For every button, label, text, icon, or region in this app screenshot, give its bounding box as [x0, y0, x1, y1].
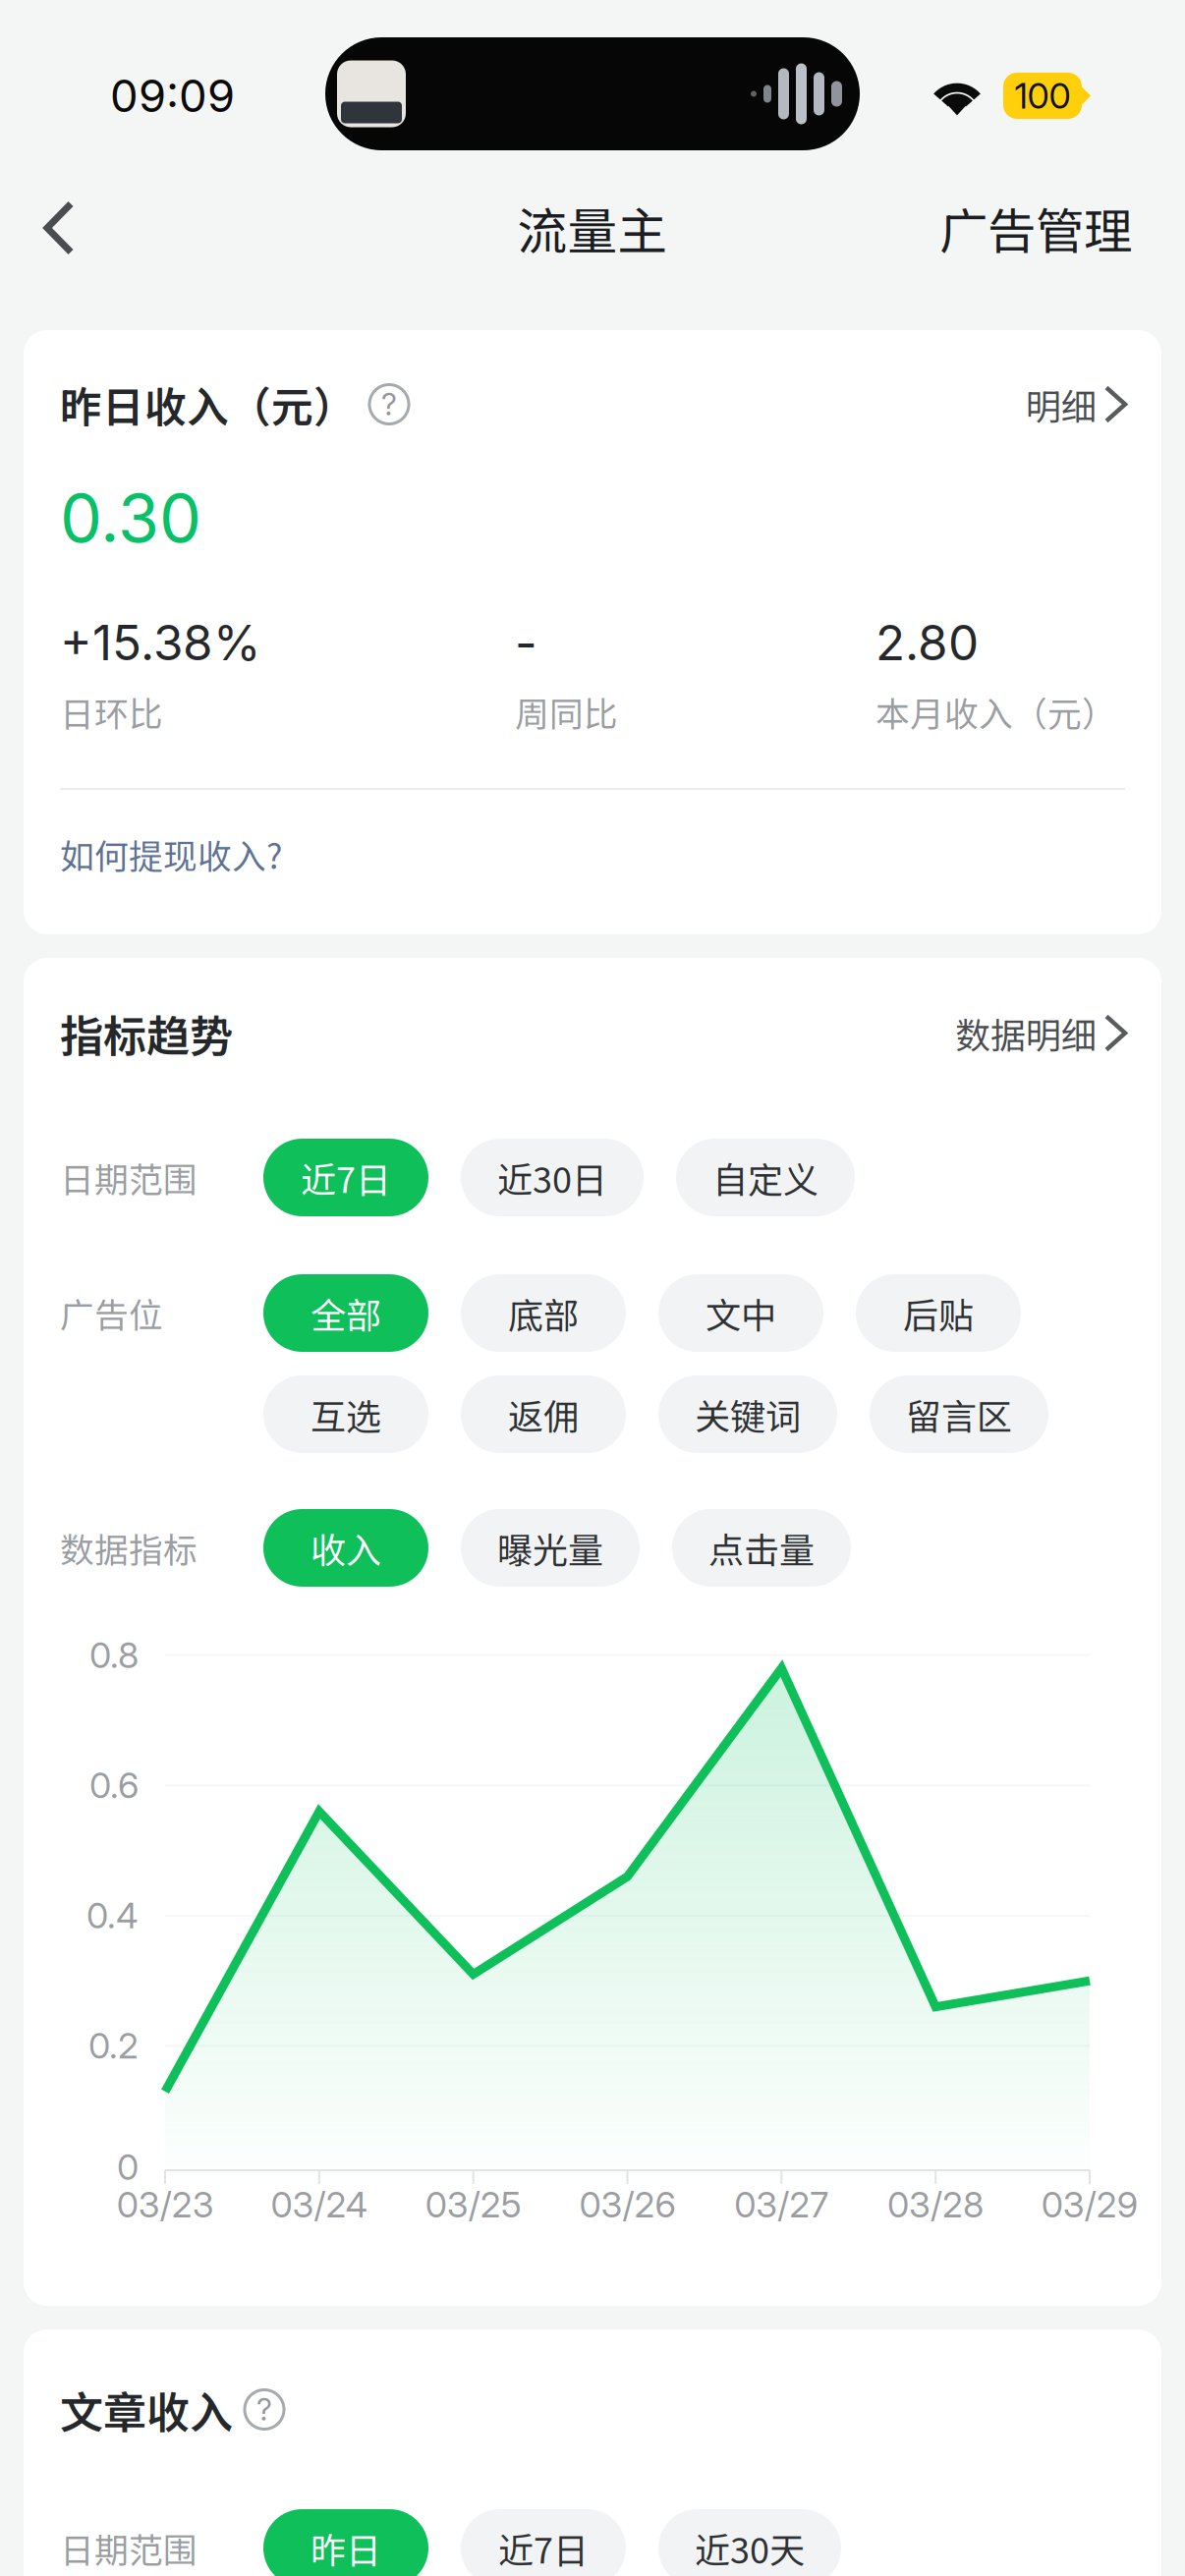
- button[interactable]: 全部: [263, 1274, 428, 1352]
- staticText: 0.4: [86, 1894, 139, 1937]
- staticText: 09:09: [110, 69, 235, 123]
- staticText: 底部: [508, 1287, 579, 1339]
- staticText: 如何提现收入?: [60, 830, 282, 879]
- staticText: 数据指标: [60, 1523, 197, 1573]
- staticText: 0.6: [89, 1764, 139, 1807]
- staticText: 0.30: [60, 477, 201, 558]
- staticText: 文章收入: [60, 2378, 233, 2441]
- staticText: 广告位: [60, 1288, 163, 1338]
- button[interactable]: 文中: [658, 1274, 823, 1352]
- button[interactable]: 近7日: [461, 2509, 626, 2576]
- button[interactable]: 返佣: [461, 1375, 626, 1453]
- staticText: 0.2: [88, 2024, 139, 2067]
- staticText: 昨日: [310, 2522, 381, 2574]
- staticText: 曝光量: [497, 1522, 603, 1573]
- staticText: 近7日: [301, 1152, 391, 1203]
- staticText: 日环比: [60, 687, 163, 736]
- staticText: 近30日: [497, 1152, 607, 1203]
- staticText: 0.8: [89, 1634, 139, 1677]
- button[interactable]: 曝光量: [461, 1509, 640, 1587]
- button[interactable]: 关键词: [658, 1375, 837, 1453]
- button[interactable]: 广告管理: [939, 193, 1132, 263]
- staticText: 03/26: [579, 2183, 676, 2226]
- button[interactable]: 收入: [263, 1509, 428, 1587]
- staticText: 互选: [310, 1389, 381, 1440]
- staticText: 03/24: [271, 2183, 368, 2226]
- staticText: 关键词: [695, 1389, 801, 1440]
- staticText: 03/23: [117, 2183, 214, 2226]
- staticText: 明细: [1026, 379, 1097, 430]
- button[interactable]: 后贴: [856, 1274, 1021, 1352]
- staticText: 03/27: [734, 2183, 829, 2226]
- staticText: 广告管理: [939, 193, 1132, 263]
- button[interactable]: 近30日: [461, 1139, 644, 1216]
- button[interactable]: 自定义: [676, 1139, 855, 1216]
- button[interactable]: 昨日: [263, 2509, 428, 2576]
- button[interactable]: 数据明细: [955, 1007, 1125, 1059]
- staticText: 指标趋势: [60, 1002, 233, 1064]
- button[interactable]: 点击量: [672, 1509, 851, 1587]
- staticText: 流量主: [517, 192, 668, 264]
- button[interactable]: 互选: [263, 1375, 428, 1453]
- staticText: 全部: [310, 1287, 381, 1339]
- staticText: ?: [381, 386, 397, 422]
- staticText: 2.80: [875, 613, 979, 672]
- staticText: 03/28: [887, 2183, 983, 2226]
- button[interactable]: 近7日: [263, 1139, 428, 1216]
- button[interactable]: Back: [20, 174, 98, 281]
- staticText: 留言区: [906, 1389, 1012, 1440]
- staticText: 点击量: [708, 1522, 815, 1573]
- button[interactable]: 近30天: [658, 2509, 841, 2576]
- staticText: 日期范围: [60, 1153, 197, 1202]
- staticText: 返佣: [508, 1389, 579, 1440]
- staticText: 近30天: [695, 2522, 805, 2574]
- button[interactable]: 明细: [1026, 379, 1125, 430]
- staticText: 日期范围: [60, 2523, 197, 2573]
- staticText: +15.38%: [60, 613, 260, 672]
- staticText: 周同比: [515, 687, 618, 736]
- button[interactable]: 如何提现收入?: [60, 790, 1125, 934]
- staticText: 0: [117, 2146, 139, 2188]
- staticText: 昨日收入（元）: [60, 374, 356, 435]
- staticText: 03/25: [425, 2183, 522, 2226]
- staticText: 文中: [705, 1287, 776, 1339]
- staticText: 100: [1015, 74, 1071, 117]
- staticText: ?: [256, 2391, 272, 2428]
- staticText: 数据明细: [955, 1007, 1097, 1059]
- staticText: 03/29: [1041, 2183, 1137, 2226]
- staticText: 自定义: [712, 1152, 818, 1203]
- staticText: -: [515, 613, 537, 672]
- staticText: 收入: [310, 1522, 381, 1573]
- staticText: 本月收入（元）: [875, 687, 1116, 736]
- button[interactable]: 留言区: [870, 1375, 1048, 1453]
- button[interactable]: 底部: [461, 1274, 626, 1352]
- staticText: 近7日: [498, 2522, 589, 2574]
- staticText: 后贴: [903, 1287, 974, 1339]
